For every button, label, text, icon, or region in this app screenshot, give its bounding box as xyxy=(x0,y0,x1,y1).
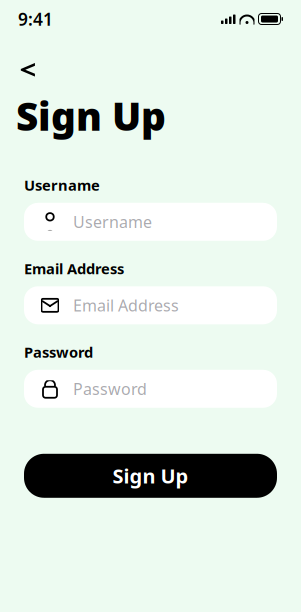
staticText: Email Address xyxy=(24,259,124,278)
button[interactable]: Email Address xyxy=(24,286,277,324)
staticText: Sign Up xyxy=(16,90,166,141)
staticText: Username xyxy=(73,211,152,232)
staticText: Password xyxy=(73,378,147,399)
staticText: Sign Up xyxy=(112,462,188,489)
button[interactable]: Username xyxy=(24,203,277,241)
staticText: 9:41 xyxy=(18,7,53,30)
staticText: ＜ xyxy=(14,53,41,85)
staticText: Username xyxy=(24,175,100,195)
staticText: Email Address xyxy=(73,295,179,316)
button[interactable]: Back xyxy=(14,54,44,84)
staticText: Password xyxy=(24,342,93,362)
button[interactable]: Sign Up xyxy=(24,454,277,498)
button[interactable]: Password xyxy=(24,370,277,408)
